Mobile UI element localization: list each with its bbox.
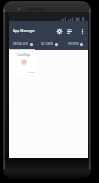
- staticText: SYSTEM: [68, 42, 79, 46]
- staticText: CoverPage: [17, 53, 31, 57]
- button[interactable]: SYSTEM: [62, 39, 88, 49]
- staticText: 0: [81, 43, 83, 46]
- staticText: 47 kB: [28, 70, 35, 73]
- button[interactable]: Settings: [54, 26, 64, 36]
- staticText: App Manager: [13, 28, 35, 33]
- staticText: INSTALLED: [13, 42, 29, 46]
- staticText: 8: [31, 43, 33, 46]
- button[interactable]: Sort: [64, 26, 74, 36]
- button[interactable]: CoverPage: [11, 51, 36, 74]
- staticText: 0: [56, 43, 58, 46]
- button[interactable]: More options: [77, 26, 87, 36]
- staticText: SD CARD: [41, 42, 54, 46]
- button[interactable]: INSTALLED: [9, 39, 36, 49]
- button[interactable]: SD CARD: [36, 39, 62, 49]
